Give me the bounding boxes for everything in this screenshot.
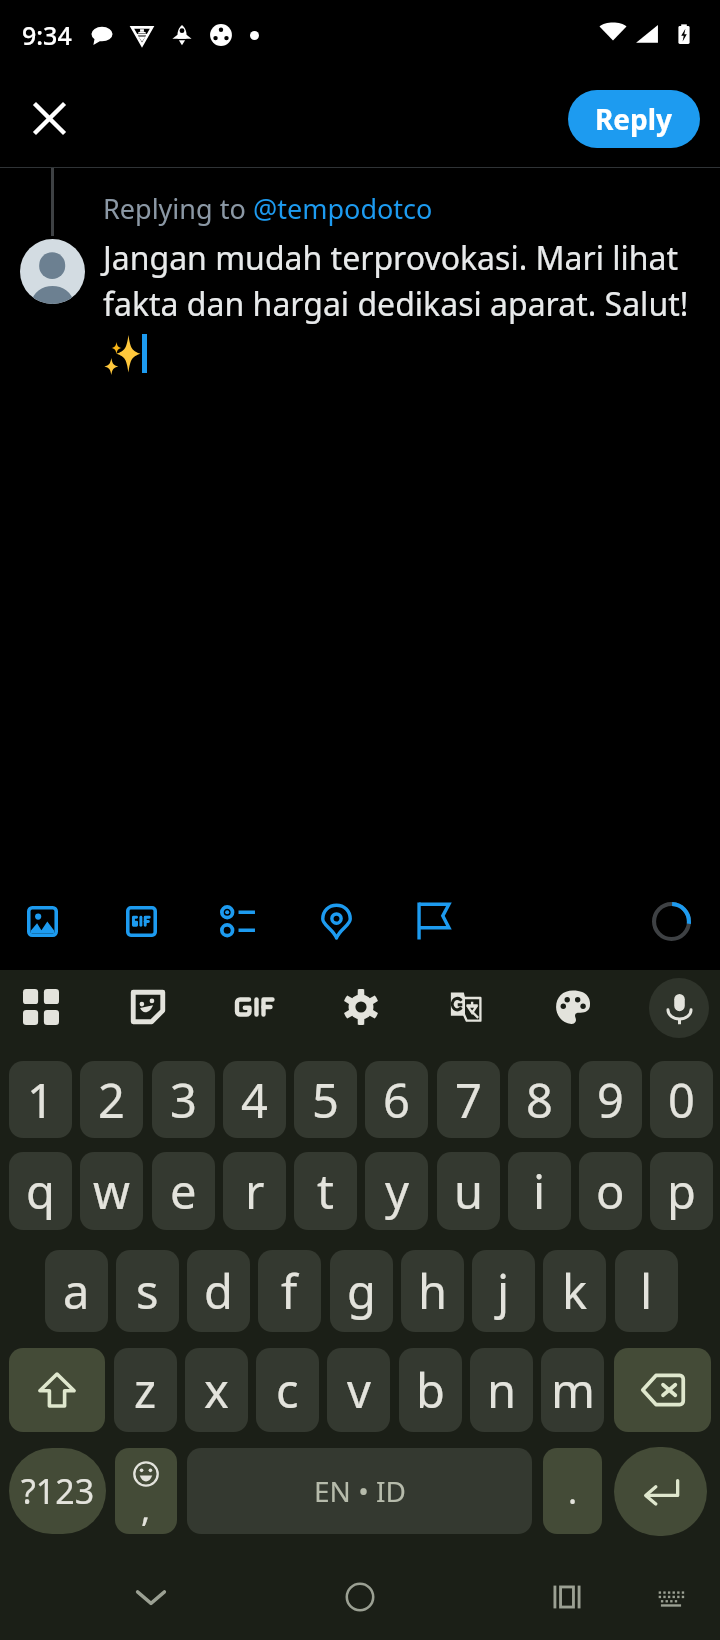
staticText: 5 [312,1068,339,1132]
button[interactable]: k [543,1250,606,1332]
button[interactable]: Settings [317,963,405,1051]
button[interactable]: Character count [643,893,699,949]
button[interactable]: v [327,1348,390,1432]
staticText: o [596,1159,625,1223]
button[interactable]: l [615,1250,678,1332]
button[interactable]: x [185,1348,248,1432]
staticText: l [640,1259,653,1323]
staticText: Reply [595,100,673,138]
button[interactable]: 3 [152,1061,215,1138]
button[interactable]: 4 [223,1061,286,1138]
button[interactable]: 5 [294,1061,357,1138]
staticText: 9 [597,1068,624,1132]
staticText: 6 [383,1068,410,1132]
button[interactable]: Switch keyboard [643,1569,699,1625]
button[interactable]: Theme [529,963,617,1051]
button[interactable]: Add location [287,872,385,970]
staticText: e [170,1159,197,1223]
button[interactable]: c [256,1348,319,1432]
button[interactable]: Apps [0,963,85,1051]
button[interactable]: 9 [579,1061,642,1138]
button[interactable]: Backspace [614,1348,711,1432]
staticText: x [204,1358,229,1422]
button[interactable]: ?123 [9,1448,106,1534]
button[interactable]: Voice input [649,978,709,1038]
button[interactable]: Stickers [104,963,192,1051]
button[interactable]: o [579,1152,642,1230]
staticText: a [63,1259,90,1323]
staticText: 9:34 [22,18,72,52]
staticText: 3 [170,1068,197,1132]
button[interactable]: s [116,1250,179,1332]
button[interactable]: w [80,1152,143,1230]
button[interactable]: Add GIF [92,872,190,970]
staticText: v [347,1358,371,1422]
staticText: @tempodotco [253,190,433,227]
button[interactable]: Recents [537,1567,597,1627]
button[interactable]: 7 [437,1061,500,1138]
button[interactable]: EN • ID [187,1448,532,1534]
staticText: 8 [526,1068,553,1132]
staticText: b [416,1358,445,1422]
button[interactable]: 2 [80,1061,143,1138]
button[interactable]: Enter [614,1447,707,1536]
staticText: Jangan mudah terprovokasi. Mari lihat fa… [103,236,689,325]
button[interactable]: h [401,1250,464,1332]
button[interactable]: q [9,1152,72,1230]
button[interactable]: Close [14,83,84,153]
button[interactable]: Home [330,1567,390,1627]
button[interactable]: Emoji and comma [115,1448,177,1534]
staticText: i [533,1159,546,1223]
button[interactable]: Add topic [385,872,483,970]
button[interactable]: Add photo [0,872,91,970]
staticText: j [497,1259,510,1323]
staticText: t [317,1159,334,1223]
staticText: y [385,1159,409,1223]
button[interactable]: f [258,1250,321,1332]
button[interactable]: 1 [9,1061,72,1138]
button[interactable]: z [114,1348,177,1432]
button[interactable]: r [223,1152,286,1230]
staticText: 4 [241,1068,268,1132]
button[interactable]: Add poll [189,872,287,970]
button[interactable]: Hide keyboard [121,1567,181,1627]
staticText: 1 [27,1068,54,1132]
button[interactable]: 6 [365,1061,428,1138]
staticText: m [551,1358,595,1422]
staticText: EN • ID [314,1472,406,1510]
button[interactable]: y [365,1152,428,1230]
staticText: k [562,1259,588,1323]
button[interactable]: Translate [422,963,510,1051]
button[interactable]: m [541,1348,604,1432]
button[interactable]: a [45,1250,108,1332]
button[interactable]: 8 [508,1061,571,1138]
button[interactable]: Reply [568,90,700,148]
staticText: h [418,1259,448,1323]
staticText: g [347,1259,376,1323]
button[interactable]: e [152,1152,215,1230]
button[interactable]: i [508,1152,571,1230]
staticText: z [134,1358,157,1422]
button[interactable]: GIF [210,963,298,1051]
button[interactable]: d [187,1250,250,1332]
button[interactable]: u [437,1152,500,1230]
staticText: u [454,1159,484,1223]
staticText: . [568,1468,578,1514]
button[interactable]: t [294,1152,357,1230]
button[interactable]: 0 [650,1061,713,1138]
staticText: n [487,1358,517,1422]
button[interactable]: p [650,1152,713,1230]
button[interactable]: g [330,1250,393,1332]
staticText: s [136,1259,159,1323]
button[interactable]: n [470,1348,533,1432]
button[interactable]: b [399,1348,462,1432]
staticText: q [26,1159,55,1223]
staticText: f [281,1259,298,1323]
button[interactable]: . [543,1448,602,1534]
staticText: 2 [98,1068,125,1132]
button[interactable]: j [472,1250,535,1332]
staticText: 0 [668,1068,695,1132]
button[interactable]: Shift [9,1348,105,1432]
staticText: w [93,1159,130,1223]
staticText: d [204,1259,233,1323]
